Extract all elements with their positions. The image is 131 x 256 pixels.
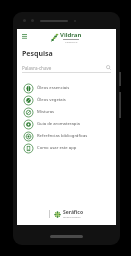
staticText: Seráfico [63, 209, 84, 216]
staticText: Misturas [37, 109, 54, 115]
staticText: Guia de aromaterapia [37, 121, 80, 127]
staticText: Palavra-chave [22, 65, 52, 71]
staticText: Como usar este app [37, 145, 77, 151]
staticText: desenvolvimento [63, 216, 81, 219]
staticText: Vildran [60, 31, 82, 39]
staticText: Referências bibliográficas [37, 133, 88, 139]
button[interactable]: Guia de aromaterapia [17, 118, 116, 130]
staticText: AROMAS [65, 40, 78, 43]
staticText: Óleos vegetais [37, 97, 66, 103]
button[interactable]: Como usar este app [17, 142, 116, 154]
button[interactable]: Óleos vegetais [17, 94, 116, 106]
button[interactable]: Referências bibliográficas [17, 130, 116, 142]
button[interactable]: Misturas [17, 106, 116, 118]
button[interactable]: Óleos essenciais [17, 82, 116, 94]
button[interactable]: Menu [20, 32, 29, 41]
other: Search [106, 65, 111, 70]
staticText: Pesquisa [22, 49, 53, 59]
staticText: Óleos essenciais [37, 85, 70, 91]
button[interactable]: Palavra-chave [22, 63, 111, 72]
